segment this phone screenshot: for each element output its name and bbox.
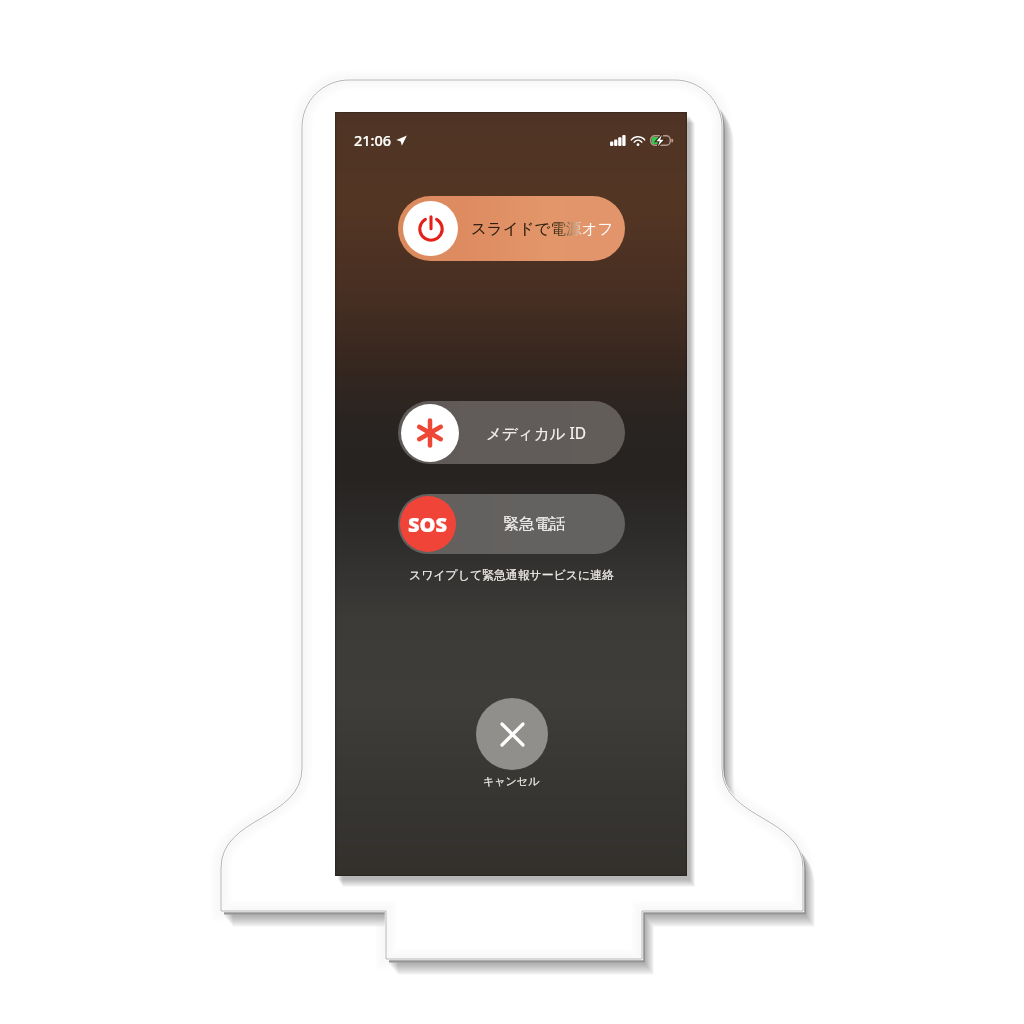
- button[interactable]: スライドで電源オフ: [398, 196, 625, 261]
- staticText: SOS: [408, 511, 448, 538]
- staticText: スワイプして緊急通報サービスに連絡: [409, 568, 614, 583]
- staticText: スライドで電源オフ: [461, 219, 623, 239]
- staticText: 21:06: [354, 130, 392, 150]
- staticText: 緊急電話: [456, 514, 613, 534]
- other: メディカル ID: [401, 404, 459, 462]
- button[interactable]: メディカル ID: [398, 401, 625, 464]
- other: 緊急電話: [400, 496, 456, 552]
- button[interactable]: キャンセル: [477, 772, 546, 790]
- staticText: メディカル ID: [459, 422, 613, 443]
- button[interactable]: キャンセル: [476, 698, 548, 770]
- other: スライドで電源オフ: [403, 201, 458, 256]
- button[interactable]: 緊急電話: [398, 494, 625, 554]
